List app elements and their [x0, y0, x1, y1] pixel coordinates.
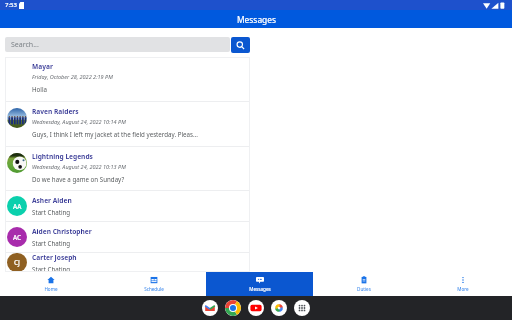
staticText: Start Chating — [32, 239, 71, 247]
staticText: Lightning Legends — [32, 152, 93, 161]
button[interactable]: AC — [5, 222, 250, 252]
button[interactable]: App — [248, 300, 264, 316]
staticText: 7:53 — [5, 1, 17, 9]
staticText: AC — [13, 233, 22, 242]
staticText: Holla — [32, 85, 47, 93]
button[interactable]: Search... — [5, 37, 230, 52]
button[interactable]: Lightning Legends — [5, 147, 250, 190]
button[interactable]: AA — [5, 191, 250, 221]
button[interactable]: Search — [231, 37, 250, 53]
staticText: Messages — [249, 286, 271, 292]
button[interactable]: Mayar — [5, 57, 250, 101]
staticText: Do we have a game on Sunday? — [32, 175, 125, 183]
button[interactable]: Raven Raiders — [5, 102, 250, 146]
staticText: Wednesday, August 24, 2022 10:13 PM — [32, 163, 126, 170]
button[interactable]: Schedule — [102, 272, 206, 296]
staticText: Start Chating — [32, 208, 71, 216]
staticText: Duties — [357, 286, 371, 292]
staticText: Asher Aiden — [32, 196, 72, 205]
button[interactable]: App — [294, 300, 310, 316]
staticText: Carter Joseph — [32, 253, 77, 262]
staticText: Aiden Christopher — [32, 227, 92, 236]
staticText: More — [457, 286, 469, 292]
staticText: CJ — [14, 258, 20, 267]
staticText: Schedule — [144, 286, 164, 292]
button[interactable]: Duties — [313, 272, 414, 296]
staticText: Home — [44, 286, 58, 292]
button[interactable]: App — [225, 300, 241, 316]
staticText: Raven Raiders — [32, 107, 79, 116]
staticText: Messages — [237, 14, 276, 25]
button[interactable]: App — [271, 300, 287, 316]
staticText: Friday, October 28, 2022 2:19 PM — [32, 73, 113, 80]
staticText: Start Chating — [32, 265, 71, 272]
staticText: Search... — [11, 40, 39, 50]
button[interactable]: Messages — [206, 272, 313, 296]
staticText: Mayar — [32, 62, 53, 71]
staticText: Wednesday, August 24, 2022 10:14 PM — [32, 118, 126, 125]
button[interactable]: App — [202, 300, 218, 316]
button[interactable]: CJ — [5, 253, 250, 272]
staticText: Guys, I think I left my jacket at the fi… — [32, 130, 198, 138]
button[interactable]: More — [414, 272, 512, 296]
button[interactable]: Home — [0, 272, 102, 296]
staticText: AA — [13, 202, 22, 211]
